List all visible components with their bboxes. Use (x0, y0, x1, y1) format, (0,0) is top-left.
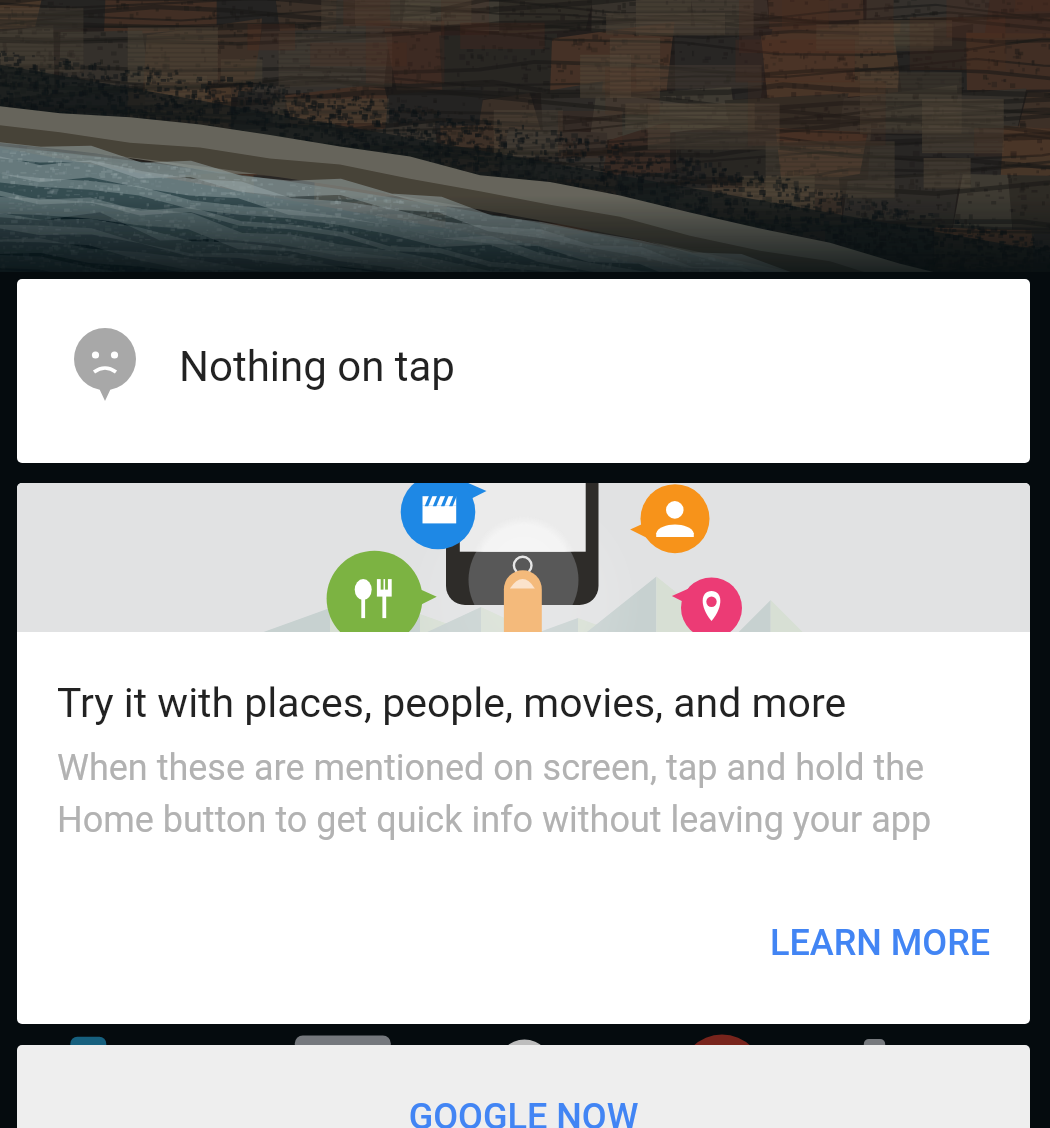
button[interactable]: Nothing on tap (17, 279, 1030, 463)
staticText: LEARN MORE (770, 922, 991, 964)
staticText: Try it with places, people, movies, and … (57, 679, 847, 727)
staticText: GOOGLE NOW (17, 1096, 1030, 1128)
button[interactable]: GOOGLE NOW (17, 1045, 1030, 1128)
staticText: Nothing on tap (179, 342, 455, 391)
staticText: When these are mentioned on screen, tap … (57, 747, 932, 841)
button[interactable]: LEARN MORE (742, 898, 1019, 988)
